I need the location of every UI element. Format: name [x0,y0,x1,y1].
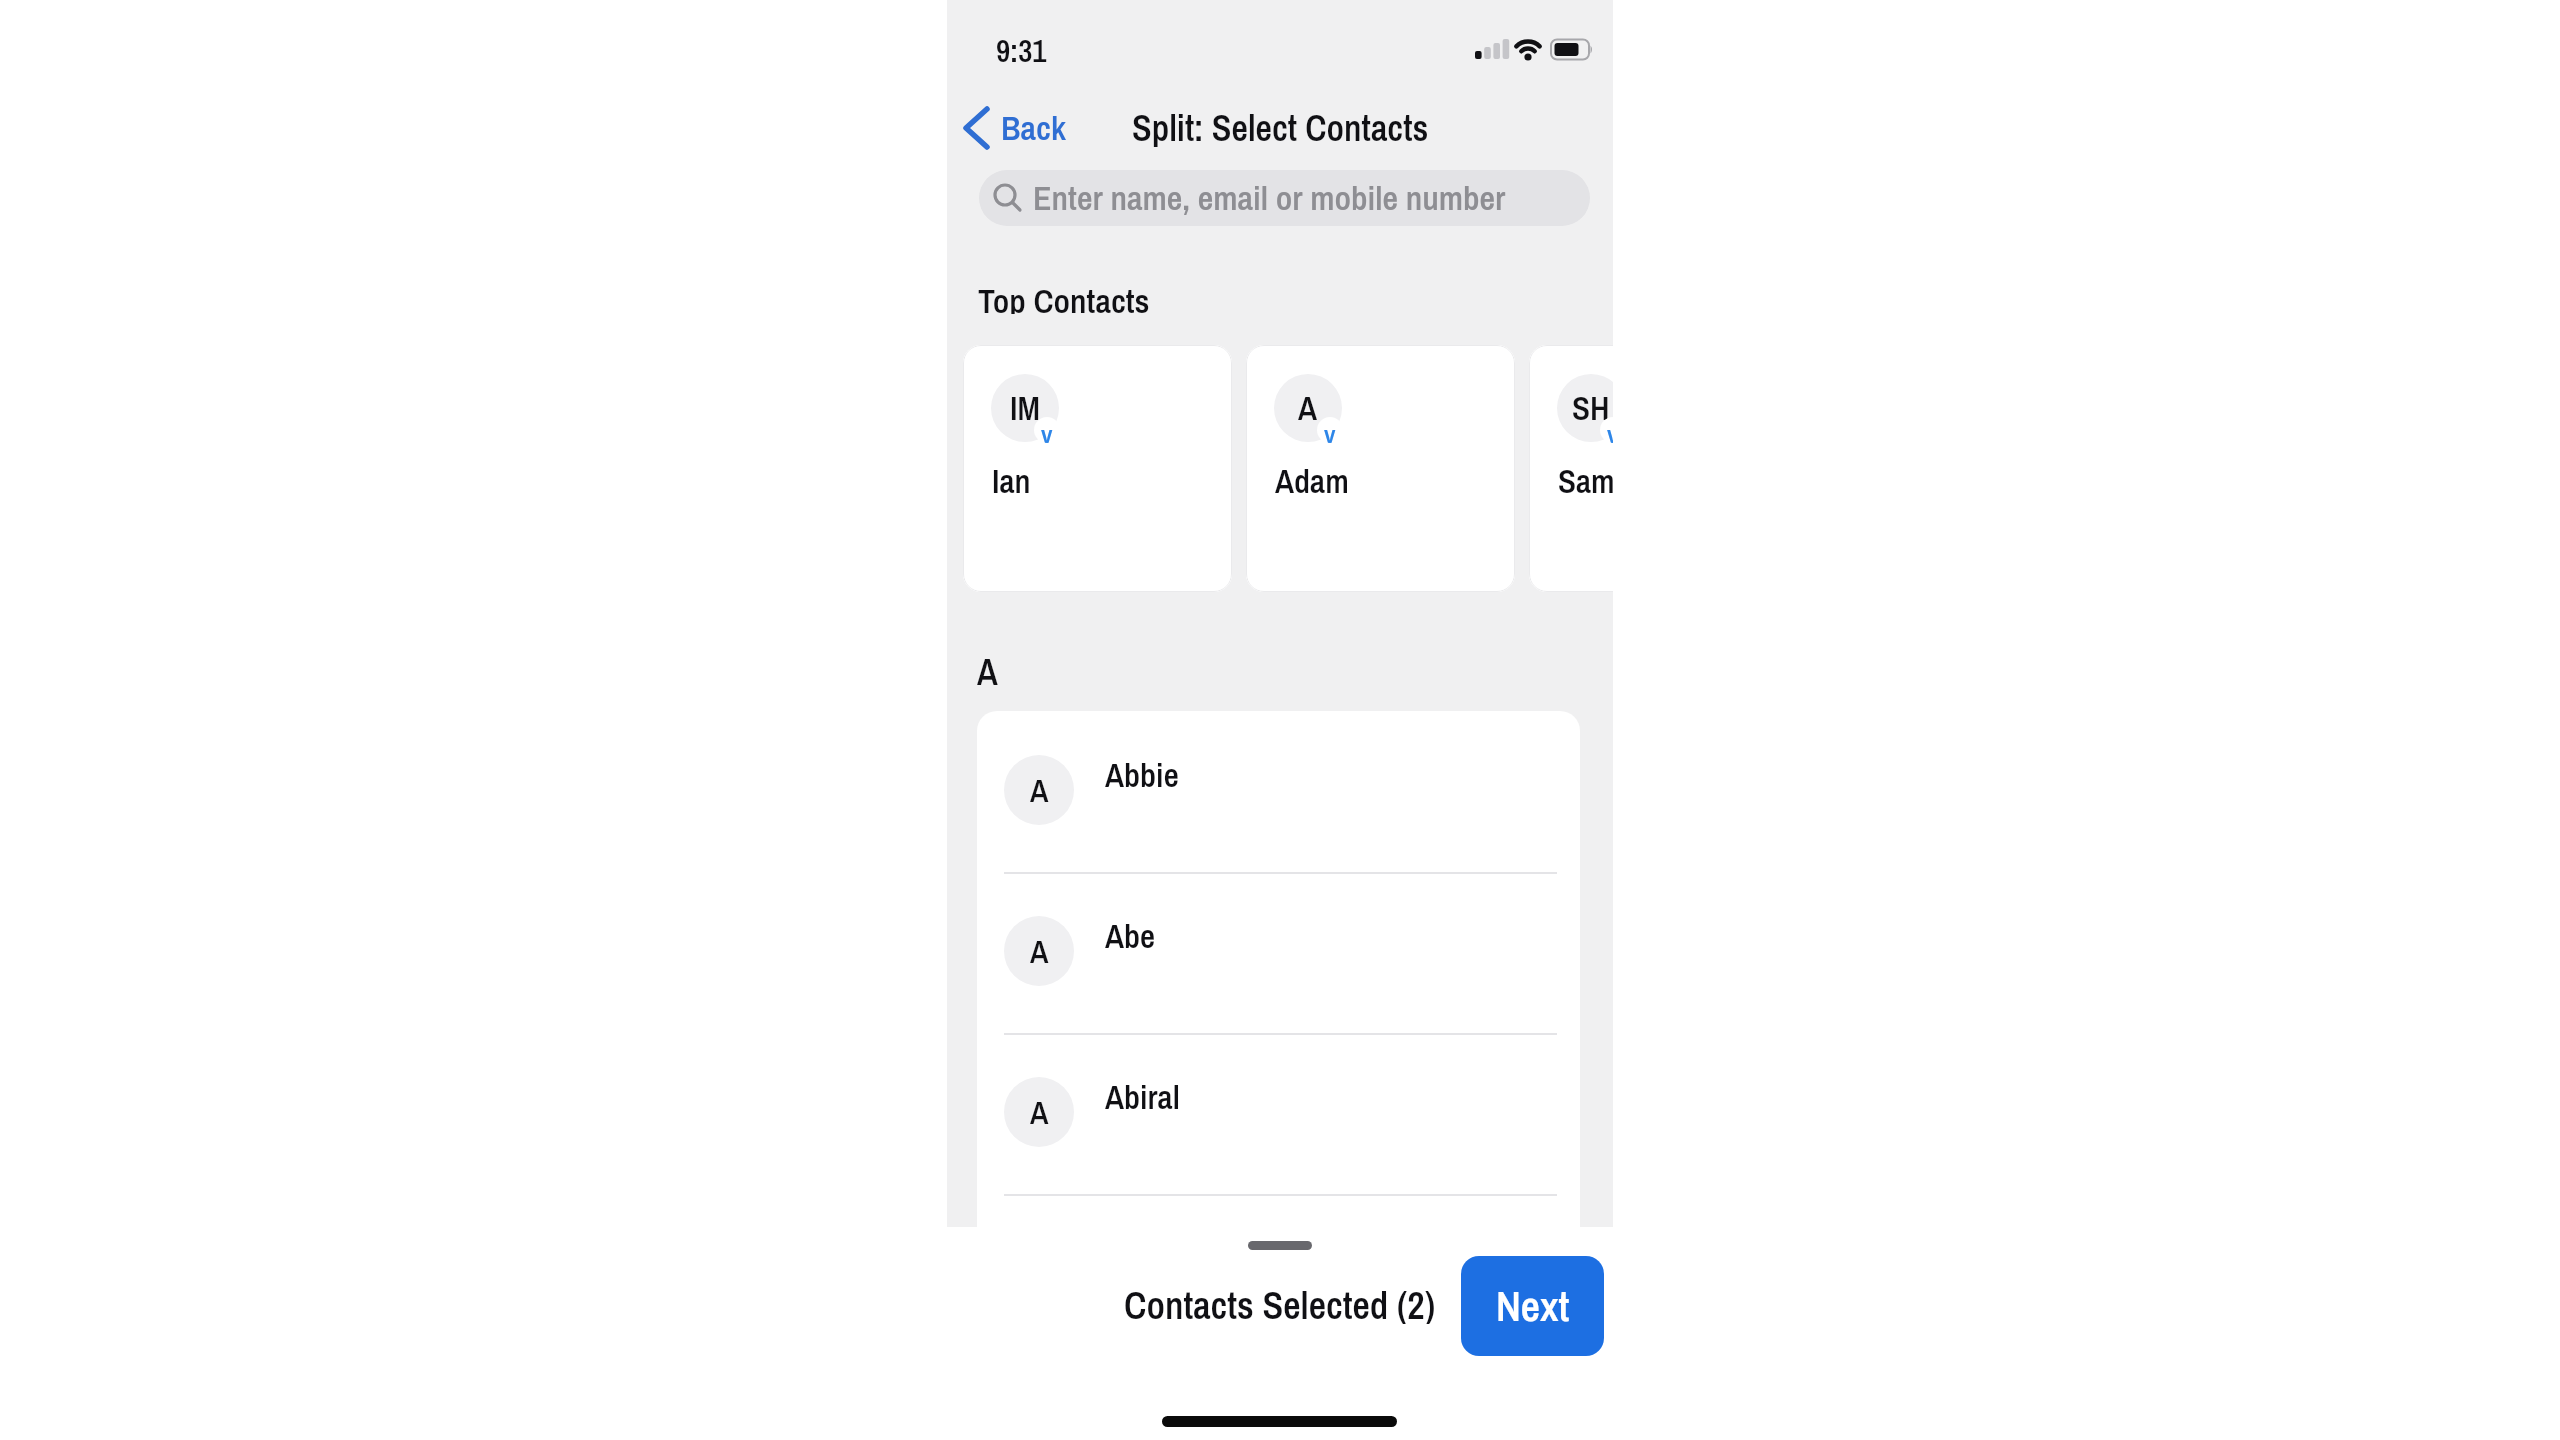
button[interactable]: A [977,1033,1580,1194]
staticText: Top Contacts [978,278,1150,314]
staticText: Split: Select Contacts [1132,104,1429,152]
button[interactable]: A [977,711,1580,872]
staticText: A [1298,386,1318,430]
button[interactable]: Enter name, email or mobile number [979,170,1590,226]
staticText: Ian [992,459,1031,499]
staticText: v [1607,417,1613,443]
staticText: Enter name, email or mobile number [1033,175,1506,221]
button[interactable]: A [977,872,1580,1033]
staticText: A [1030,769,1049,812]
staticText: SH [1572,386,1610,430]
staticText: Next [1496,1278,1570,1335]
staticText: Abiral [1105,1075,1180,1115]
staticText: Abe [1105,914,1156,954]
staticText: Sam [1558,459,1613,499]
staticText: 9:31 [996,30,1047,66]
staticText: v [1041,417,1053,443]
staticText: IM [1010,386,1041,430]
staticText: A [1030,930,1049,973]
staticText: Contacts Selected (2) [1124,1280,1436,1324]
staticText: A [1030,1091,1049,1134]
staticText: Back [1001,105,1067,151]
staticText: v [1324,417,1336,443]
button[interactable]: IM [963,345,1232,592]
button[interactable]: Back [961,104,1067,152]
staticText: Adam [1275,459,1349,499]
staticText: Abbie [1105,753,1179,793]
staticText: A [977,648,998,688]
button[interactable]: A [1246,345,1515,592]
button[interactable]: Next [1461,1256,1604,1356]
button[interactable]: SH [1529,345,1613,592]
